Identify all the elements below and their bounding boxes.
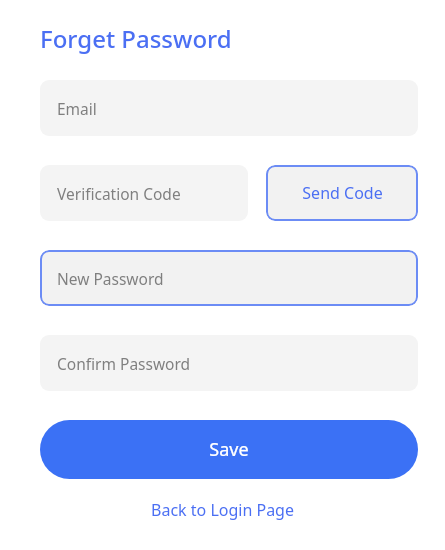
staticText: Forget Password — [40, 22, 232, 54]
staticText: Confirm Password — [57, 353, 191, 374]
button[interactable]: Save — [40, 420, 418, 479]
staticText: Save — [209, 437, 249, 462]
staticText: New Password — [57, 268, 164, 289]
staticText: Back to Login Page — [151, 499, 294, 521]
staticText: Email — [57, 98, 97, 119]
button[interactable]: Verification Code — [40, 165, 248, 221]
button[interactable]: Back to Login Page — [145, 495, 300, 525]
button[interactable]: New Password — [40, 250, 418, 306]
button[interactable]: Send Code — [266, 165, 418, 221]
staticText: Send Code — [302, 182, 383, 204]
button[interactable]: Confirm Password — [40, 335, 418, 391]
staticText: Verification Code — [57, 183, 181, 204]
button[interactable]: Email — [40, 80, 418, 136]
